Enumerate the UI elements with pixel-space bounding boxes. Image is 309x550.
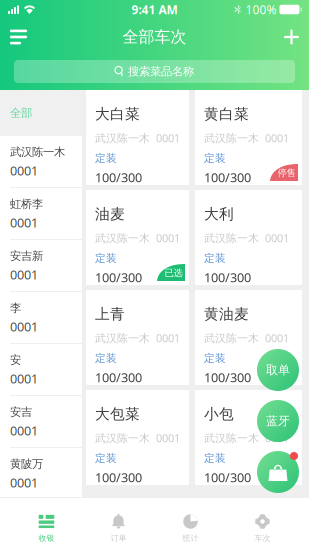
button[interactable]: 李: [0, 292, 82, 344]
staticText: 已选: [164, 267, 182, 279]
staticText: 蓝牙: [266, 413, 290, 428]
staticText: 武汉陈一木 0001: [204, 430, 289, 445]
staticText: 定装: [204, 351, 226, 365]
staticText: 统计: [182, 533, 198, 543]
staticText: 武汉陈一木 0001: [95, 130, 180, 145]
staticText: 9:41 AM: [131, 1, 177, 18]
button[interactable]: 统计: [154, 497, 226, 549]
button[interactable]: 订单: [82, 497, 154, 549]
staticText: 全部: [10, 106, 32, 120]
staticText: 定装: [204, 151, 226, 165]
staticText: 虹桥李: [10, 197, 43, 211]
button[interactable]: 搜索菜品名称: [14, 60, 295, 83]
staticText: 100/300: [95, 269, 142, 286]
staticText: 100%: [245, 1, 276, 18]
staticText: 武汉陈一木 0001: [95, 230, 180, 245]
staticText: 武汉陈一木 0001: [204, 230, 289, 245]
button[interactable]: 黄白菜: [195, 90, 302, 185]
staticText: 0001: [10, 422, 38, 439]
staticText: 武汉陈一木 0001: [95, 430, 180, 445]
button[interactable]: 安吉: [0, 396, 82, 448]
button[interactable]: 收银: [10, 497, 82, 549]
staticText: 李: [10, 301, 21, 315]
staticText: 定装: [95, 251, 117, 265]
staticText: 0001: [10, 266, 38, 283]
staticText: 武汉陈一木 0001: [204, 330, 289, 345]
staticText: 全部车次: [122, 27, 186, 47]
button[interactable]: 大包菜: [86, 390, 189, 485]
staticText: 大利: [204, 205, 234, 223]
staticText: 定装: [95, 451, 117, 465]
button[interactable]: 油麦: [86, 190, 189, 285]
button[interactable]: 上青: [86, 290, 189, 385]
staticText: 0001: [10, 214, 38, 231]
staticText: 黄陂万: [10, 457, 43, 471]
button[interactable]: 全部: [0, 90, 82, 136]
button[interactable]: 安: [0, 344, 82, 396]
staticText: 搜索菜品名称: [128, 64, 194, 79]
button[interactable]: 安吉新: [0, 240, 82, 292]
staticText: 100/300: [204, 169, 251, 186]
button[interactable]: Cart: [257, 451, 299, 493]
staticText: 0001: [10, 474, 38, 491]
staticText: 收银: [38, 533, 54, 543]
staticText: 100/300: [95, 369, 142, 386]
staticText: 小包: [204, 405, 234, 423]
staticText: 黄白菜: [204, 105, 249, 123]
button[interactable]: 黄油麦: [195, 290, 302, 385]
staticText: 定装: [204, 251, 226, 265]
staticText: 0001: [10, 318, 38, 335]
staticText: 黄油麦: [204, 305, 249, 323]
staticText: 安吉: [10, 405, 32, 419]
button[interactable]: 车次: [226, 497, 298, 549]
staticText: 订单: [110, 533, 126, 543]
staticText: 定装: [95, 351, 117, 365]
staticText: 100/300: [204, 369, 251, 386]
staticText: 100/300: [95, 469, 142, 486]
staticText: 车次: [254, 533, 270, 543]
staticText: 定装: [95, 151, 117, 165]
staticText: 0001: [10, 370, 38, 387]
button[interactable]: 小包: [195, 390, 302, 485]
staticText: 上青: [95, 305, 125, 323]
staticText: 定装: [204, 451, 226, 465]
staticText: 武汉陈一木: [10, 145, 65, 159]
staticText: 大包菜: [95, 405, 140, 423]
staticText: 武汉陈一木 0001: [204, 130, 289, 145]
staticText: 100/300: [204, 469, 251, 486]
staticText: 大白菜: [95, 105, 140, 123]
button[interactable]: Menu: [10, 21, 48, 53]
button[interactable]: 虹桥李: [0, 188, 82, 240]
button[interactable]: 大白菜: [86, 90, 189, 185]
staticText: 100/300: [95, 169, 142, 186]
staticText: 停售: [277, 167, 295, 179]
staticText: 武汉陈一木 0001: [95, 330, 180, 345]
staticText: 油麦: [95, 205, 125, 223]
button[interactable]: 武汉陈一木: [0, 136, 82, 188]
button[interactable]: 取单: [257, 349, 299, 391]
staticText: 安: [10, 353, 21, 367]
staticText: 100/300: [204, 269, 251, 286]
button[interactable]: 大利: [195, 190, 302, 285]
staticText: 0001: [10, 162, 38, 179]
button[interactable]: Add: [261, 21, 299, 53]
staticText: 安吉新: [10, 249, 43, 263]
staticText: 取单: [266, 362, 290, 377]
button[interactable]: 黄陂万: [0, 448, 82, 500]
button[interactable]: 蓝牙: [257, 400, 299, 442]
